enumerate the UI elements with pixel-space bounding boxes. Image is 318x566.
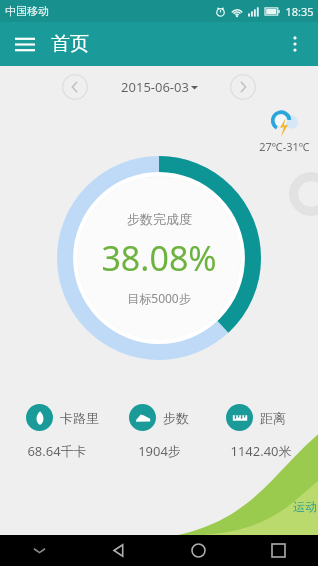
staticText: 2015-06-03 <box>121 78 189 96</box>
staticText: 38.08% <box>101 235 217 281</box>
staticText: 27℃-31℃ <box>259 139 310 154</box>
button[interactable]: More options <box>277 26 313 62</box>
button[interactable]: Back <box>79 535 158 566</box>
staticText: 68.64千卡 <box>27 442 87 460</box>
button[interactable]: Next day <box>228 72 258 102</box>
button[interactable]: 2015-06-03 <box>121 78 198 96</box>
button[interactable]: Activity shortcut <box>289 172 318 216</box>
button[interactable]: 距离 <box>207 404 304 431</box>
button[interactable]: Home <box>158 535 238 566</box>
button[interactable]: Navigation menu <box>7 26 43 62</box>
button[interactable]: Recent apps <box>238 535 318 566</box>
staticText: 卡路里 <box>60 410 99 426</box>
button[interactable]: Previous day <box>60 72 90 102</box>
staticText: 步数完成度 <box>127 211 192 227</box>
button[interactable]: Hide keyboard <box>0 535 79 566</box>
staticText: 首页 <box>51 32 89 56</box>
staticText: 1142.40米 <box>230 442 292 460</box>
button[interactable]: 卡路里 <box>14 404 110 431</box>
staticText: 运动 <box>293 499 317 514</box>
staticText: 目标5000步 <box>127 290 191 306</box>
staticText: 1904步 <box>138 442 181 460</box>
staticText: 中国移动 <box>5 4 49 18</box>
staticText: 步数 <box>163 410 189 426</box>
staticText: 18:35 <box>285 4 314 19</box>
button[interactable]: 27℃-31℃ <box>259 108 310 154</box>
button[interactable]: 步数 <box>110 404 207 431</box>
staticText: 距离 <box>260 410 286 426</box>
